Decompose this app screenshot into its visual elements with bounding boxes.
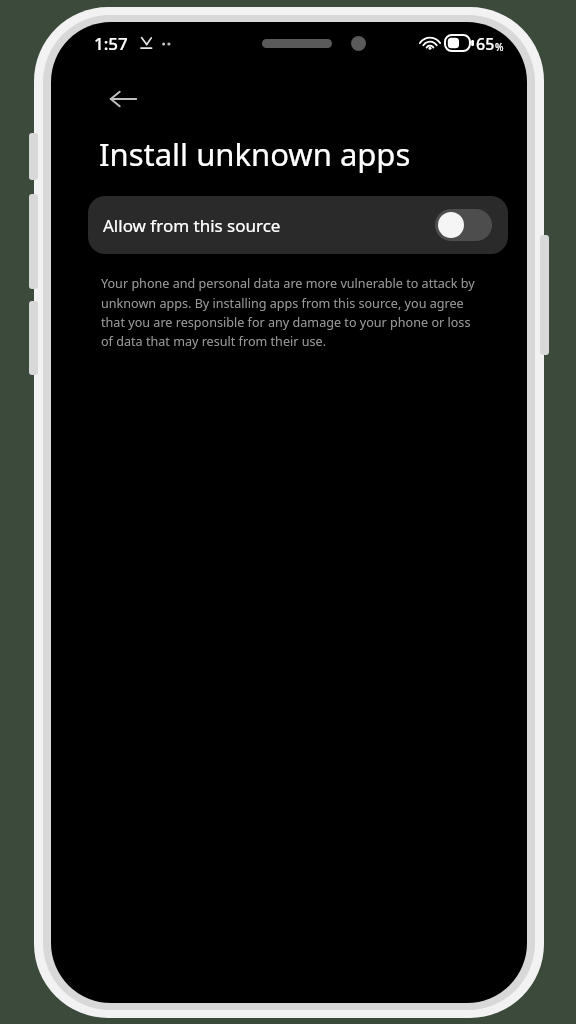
button[interactable]: Back: [99, 75, 147, 123]
staticText: Allow from this source: [103, 214, 281, 237]
staticText: Install unknown apps: [99, 133, 411, 175]
staticText: Your phone and personal data are more vu…: [101, 275, 483, 350]
staticText: 65: [476, 33, 495, 55]
button[interactable]: Allow from this source: [88, 196, 508, 254]
other: Allow from this source toggle: [435, 209, 492, 241]
staticText: 1:57: [94, 32, 128, 55]
staticText: %: [495, 40, 504, 54]
